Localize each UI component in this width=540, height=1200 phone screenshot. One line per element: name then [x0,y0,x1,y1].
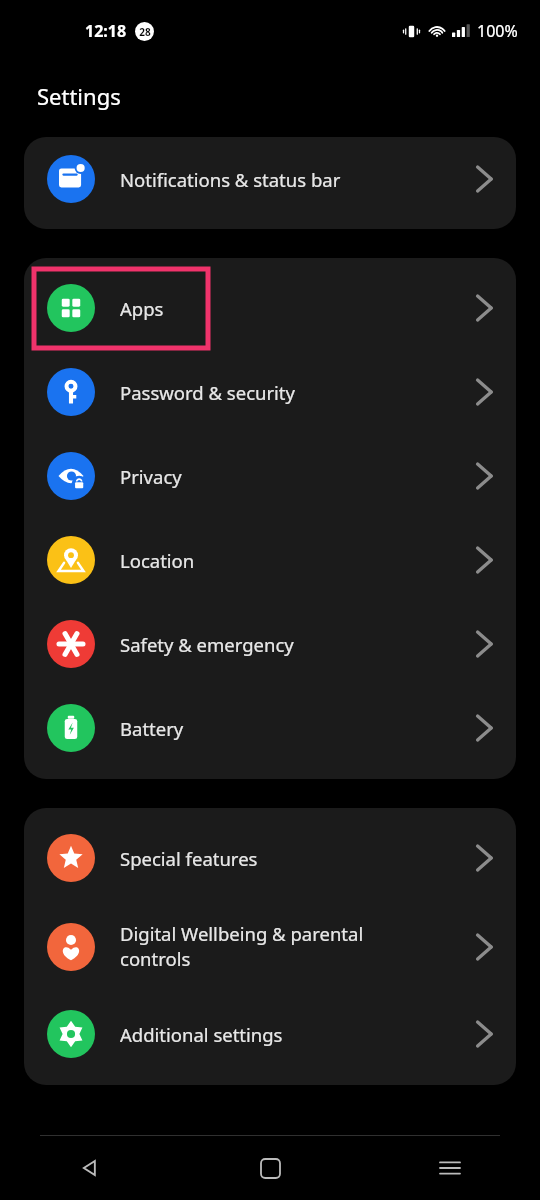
button[interactable]: Special features [24,816,516,900]
button[interactable]: Location [24,518,516,602]
button[interactable]: Home [180,1136,360,1200]
button[interactable]: Safety & emergency [24,602,516,686]
staticText: Apps [120,296,164,321]
button[interactable]: Password & security [24,350,516,434]
staticText: Battery [120,716,184,741]
staticText: Password & security [120,380,295,405]
button[interactable]: Privacy [24,434,516,518]
staticText: Notifications & status bar [120,167,341,192]
button[interactable]: Apps [24,266,516,350]
staticText: Safety & emergency [120,632,294,657]
staticText: Special features [120,846,258,871]
button[interactable]: Notifications & status bar [24,137,516,221]
staticText: Location [120,548,195,573]
staticText: 100% [477,20,518,42]
staticText: Settings [37,81,121,111]
staticText: 12:18 [85,20,127,42]
staticText: 28 [139,25,151,39]
button[interactable]: Digital Wellbeing & parental controls [24,900,516,992]
button[interactable]: Additional settings [24,992,516,1076]
staticText: Digital Wellbeing & parental controls [120,921,364,972]
button[interactable]: Battery [24,686,516,770]
staticText: Privacy [120,464,182,489]
button[interactable]: Recent apps [360,1136,540,1200]
button[interactable]: Back [0,1136,180,1200]
staticText: Additional settings [120,1022,283,1047]
